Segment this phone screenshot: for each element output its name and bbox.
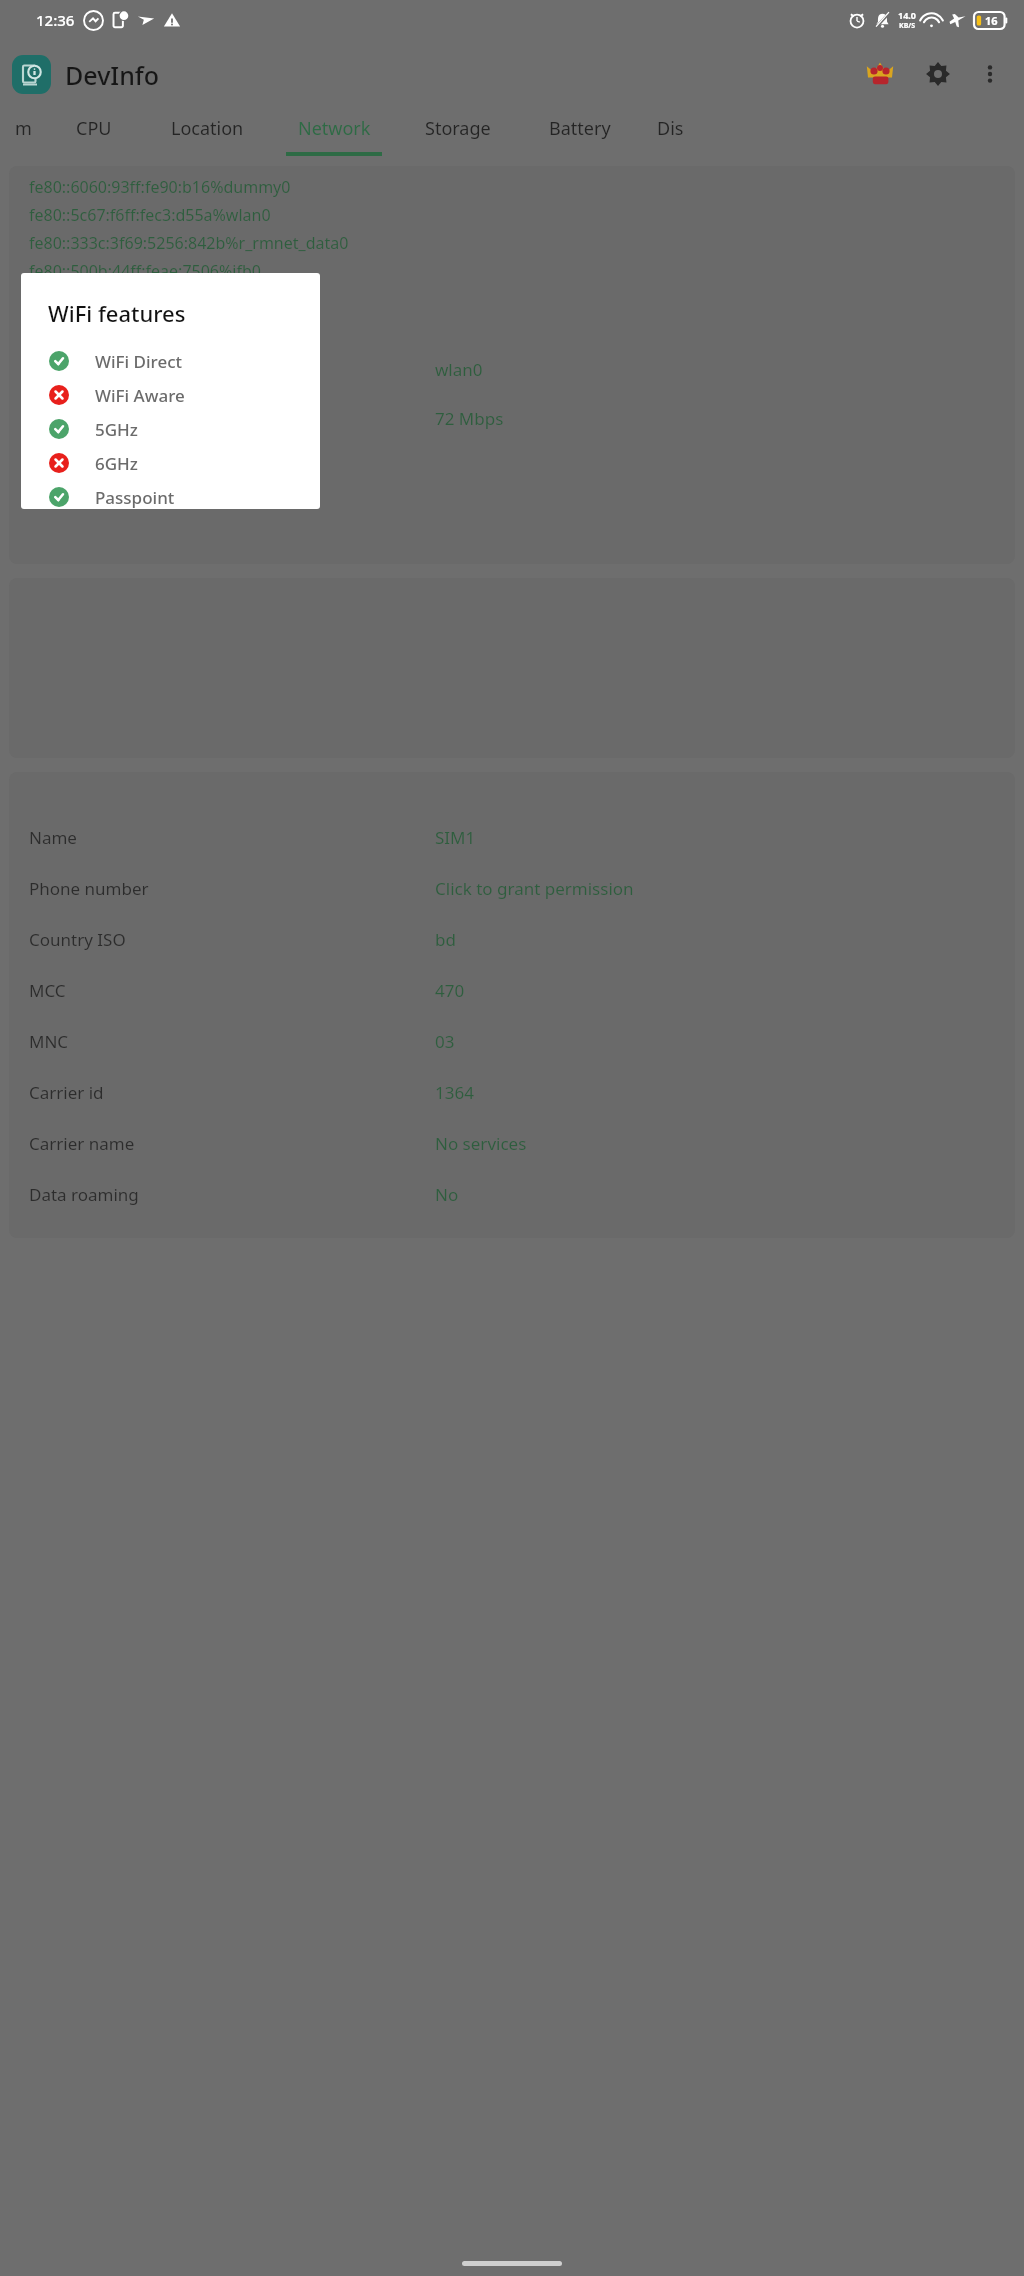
button[interactable]: Carrier id xyxy=(29,1081,995,1104)
staticText: 12:36 xyxy=(36,10,75,30)
staticText: No xyxy=(435,1183,459,1206)
button[interactable]: interface xyxy=(29,358,995,381)
staticText: Location xyxy=(171,116,244,141)
staticText: 5GHz xyxy=(95,418,138,441)
button[interactable]: Country ISO xyxy=(29,928,995,951)
staticText: WiFi features xyxy=(48,298,186,328)
button[interactable]: Passpoint xyxy=(21,485,320,509)
button[interactable]: Data roaming xyxy=(29,1183,995,1206)
button[interactable]: More options xyxy=(970,54,1010,94)
staticText: No services xyxy=(435,1132,527,1155)
staticText: KB/S xyxy=(899,21,916,31)
button[interactable]: 5GHz xyxy=(21,417,320,441)
button[interactable]: WiFi Direct xyxy=(21,349,320,373)
staticText: fe80::500b:44ff:feae:7506%ifb0 xyxy=(29,260,261,282)
staticText: interface xyxy=(29,358,100,381)
button[interactable]: Phone number xyxy=(29,877,995,900)
button[interactable]: m xyxy=(0,108,46,160)
staticText: Country ISO xyxy=(29,928,126,951)
button[interactable]: Upgrade to Pro xyxy=(858,52,902,96)
staticText: Passpoint xyxy=(95,486,175,509)
staticText: Battery xyxy=(549,116,611,141)
staticText: fe80::5c67:f6ff:fec3:d55a%wlan0 xyxy=(29,204,271,226)
staticText: 6GHz xyxy=(95,452,138,475)
button[interactable]: Link speed xyxy=(29,407,995,430)
button[interactable]: Name xyxy=(29,826,995,849)
staticText: WiFi Direct xyxy=(95,350,183,373)
staticText: m xyxy=(15,116,32,141)
staticText: 14.0 xyxy=(898,9,916,21)
staticText: DevInfo xyxy=(65,58,160,92)
staticText: MCC xyxy=(29,979,66,1002)
button[interactable]: Carrier name xyxy=(29,1132,995,1155)
button[interactable]: Location xyxy=(142,108,272,160)
staticText: SIM1 xyxy=(435,826,476,849)
staticText: wlan0 xyxy=(435,358,483,381)
staticText: fe80::333c:3f69:5256:842b%r_rmnet_data0 xyxy=(29,232,349,254)
button[interactable]: MCC xyxy=(29,979,995,1002)
staticText: 16 xyxy=(985,13,998,28)
staticText: 470 xyxy=(435,979,465,1002)
staticText: bd xyxy=(435,928,456,951)
staticText: Data roaming xyxy=(29,1183,139,1206)
staticText: Name xyxy=(29,826,77,849)
staticText: Carrier name xyxy=(29,1132,135,1155)
staticText: Phone number xyxy=(29,877,149,900)
staticText: fe80::6060:93ff:fe90:b16%dummy0 xyxy=(29,176,291,198)
staticText: fe80::5cbe:18ff:feac:1099%ifb1 xyxy=(29,316,258,338)
staticText: WiFi Aware xyxy=(95,384,185,407)
button[interactable]: 6GHz xyxy=(21,451,320,475)
staticText: 72 Mbps xyxy=(435,407,504,430)
button[interactable]: WiFi Aware xyxy=(21,383,320,407)
button[interactable]: Settings xyxy=(916,52,960,96)
button[interactable]: Battery xyxy=(520,108,640,160)
staticText: CPU xyxy=(76,116,112,141)
staticText: Click to grant permission xyxy=(435,877,634,900)
staticText: fe80::3cff:15ff:fea5:d19e%ifb2 xyxy=(29,288,253,310)
button[interactable]: MNC xyxy=(29,1030,995,1053)
staticText: 1364 xyxy=(435,1081,474,1104)
button[interactable]: Dis xyxy=(640,108,700,160)
staticText: 03 xyxy=(435,1030,455,1053)
staticText: Carrier id xyxy=(29,1081,104,1104)
button[interactable]: Network xyxy=(272,108,396,160)
staticText: Network xyxy=(298,116,371,141)
staticText: Storage xyxy=(425,116,491,141)
staticText: Link speed xyxy=(29,407,115,430)
staticText: MNC xyxy=(29,1030,69,1053)
button[interactable]: Storage xyxy=(396,108,520,160)
button[interactable]: CPU xyxy=(46,108,142,160)
staticText: Dis xyxy=(657,116,684,141)
